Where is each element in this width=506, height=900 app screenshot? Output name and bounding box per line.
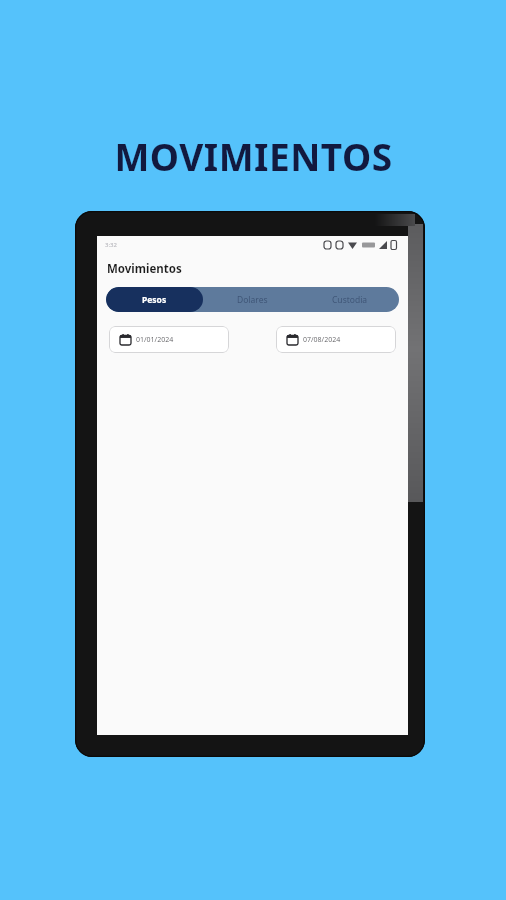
button[interactable]: Seleccionar fecha — [276, 326, 396, 353]
other: Seleccionar fecha — [287, 334, 298, 345]
staticText: 01/01/2024 — [136, 335, 174, 345]
staticText: 07/08/2024 — [303, 335, 341, 345]
staticText: MOVIMIENTOS — [114, 131, 393, 181]
button[interactable]: Pesos — [106, 287, 203, 312]
button[interactable]: Custodia — [301, 287, 399, 312]
staticText: Pesos — [142, 294, 167, 306]
staticText: Movimientos — [107, 261, 182, 277]
staticText: Dolares — [237, 294, 268, 306]
other: Seleccionar fecha — [120, 334, 131, 345]
button[interactable]: Dolares — [203, 287, 301, 312]
staticText: Custodia — [332, 294, 368, 306]
staticText: 3:32 — [105, 241, 117, 249]
button[interactable]: Seleccionar fecha — [109, 326, 229, 353]
